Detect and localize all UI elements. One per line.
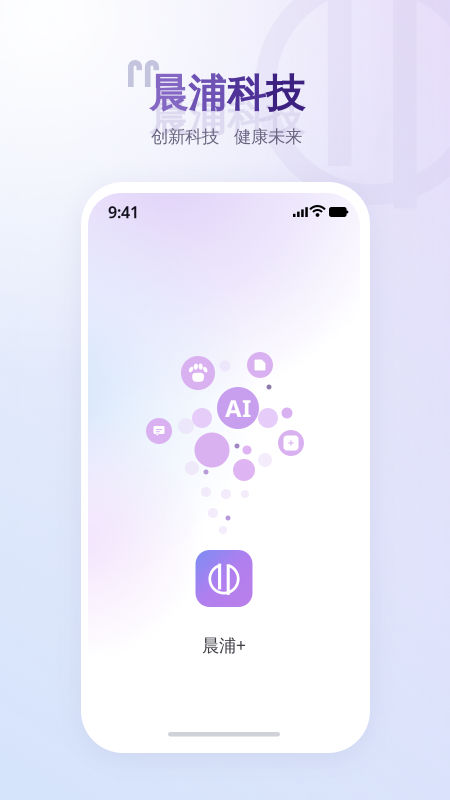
staticText: 晨 bbox=[149, 70, 188, 117]
staticText: 科 bbox=[227, 94, 266, 141]
staticText: 晨浦+ bbox=[202, 633, 246, 656]
staticText: 科 bbox=[227, 70, 266, 117]
staticText: 9:41 bbox=[108, 201, 139, 223]
staticText: 浦 bbox=[188, 70, 227, 117]
staticText: 晨 bbox=[149, 94, 188, 141]
staticText: 技 bbox=[266, 70, 305, 117]
staticText: AI bbox=[225, 392, 251, 424]
staticText: 技 bbox=[266, 94, 305, 141]
staticText: 创新科技 健康未来 bbox=[151, 126, 302, 147]
staticText: 浦 bbox=[188, 94, 227, 141]
